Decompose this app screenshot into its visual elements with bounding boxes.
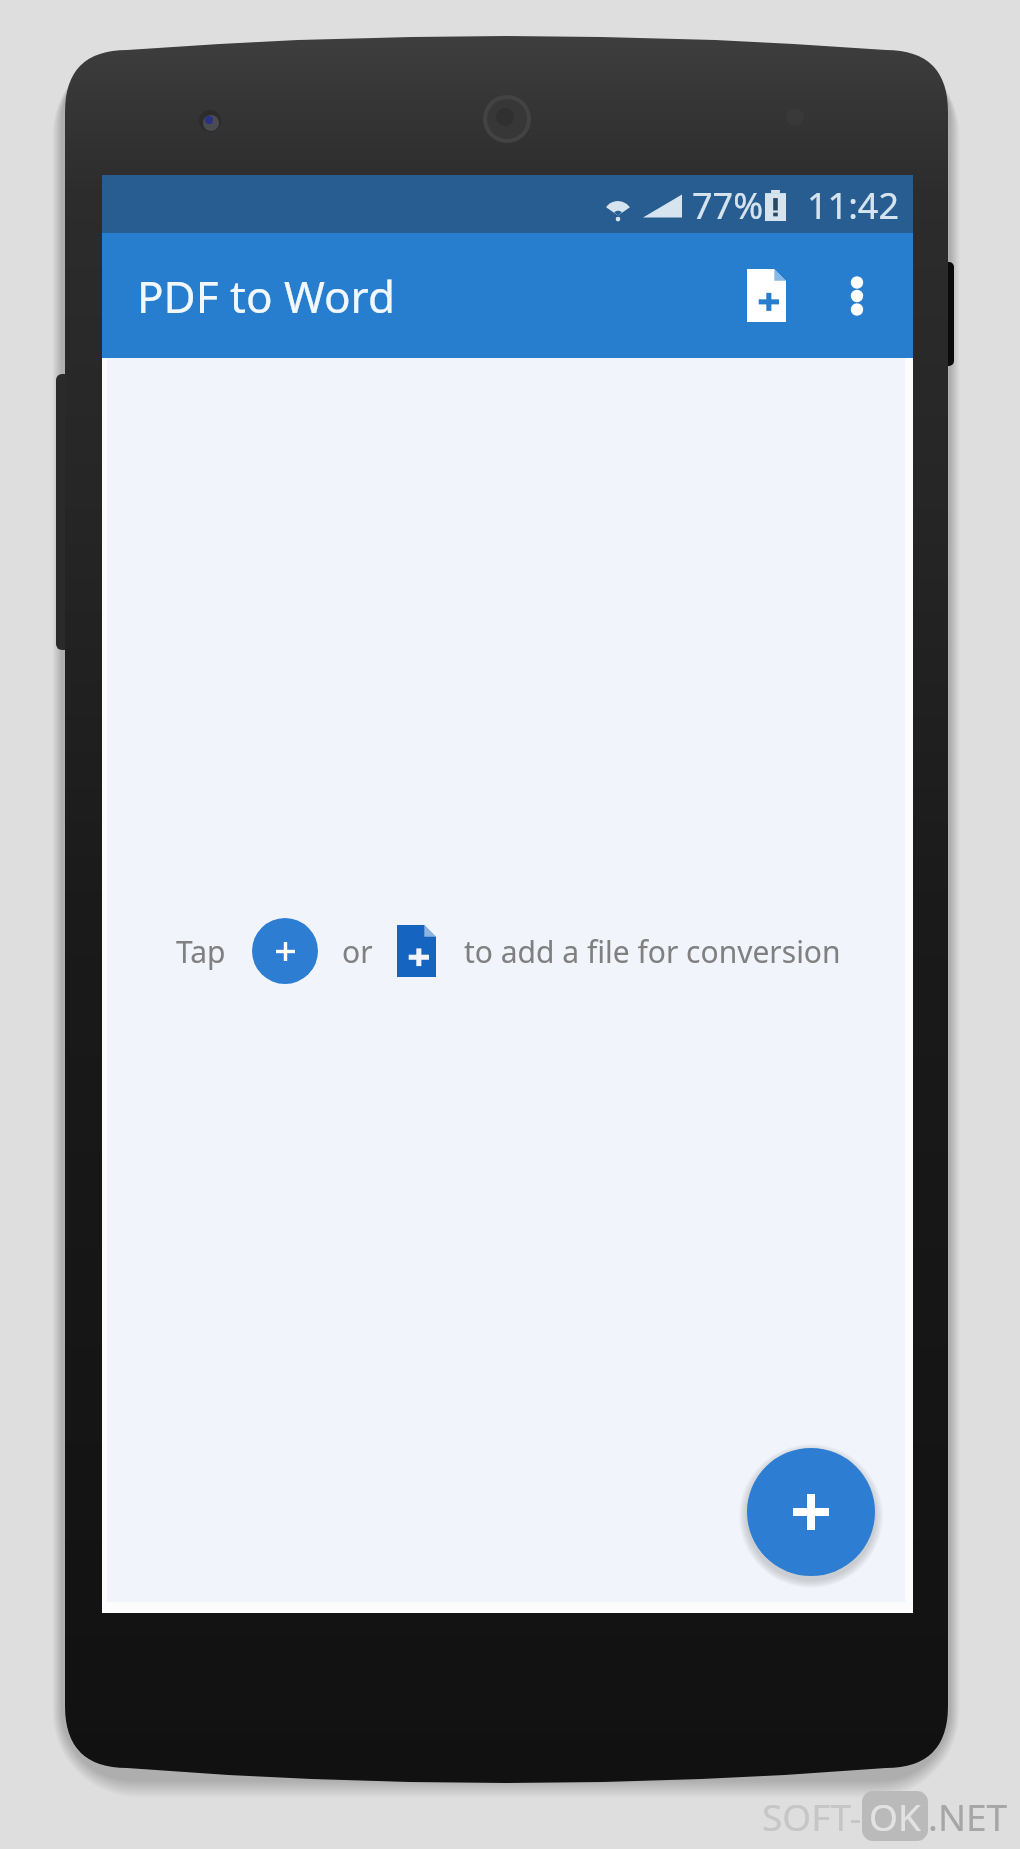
button[interactable]: Add: [252, 918, 318, 984]
staticText: 77%: [692, 181, 764, 230]
staticText: Tap: [176, 931, 226, 972]
staticText: 11:42: [807, 181, 900, 230]
staticText: SOFT-: [762, 1791, 862, 1841]
button[interactable]: Add file: [722, 251, 810, 339]
staticText: PDF to Word: [137, 266, 395, 326]
staticText: .NET: [928, 1791, 1008, 1841]
button[interactable]: Add file: [747, 1448, 875, 1576]
staticText: OK: [869, 1791, 921, 1841]
button[interactable]: More options: [813, 252, 901, 340]
staticText: to add a file for conversion: [464, 931, 841, 972]
staticText: or: [342, 931, 373, 972]
